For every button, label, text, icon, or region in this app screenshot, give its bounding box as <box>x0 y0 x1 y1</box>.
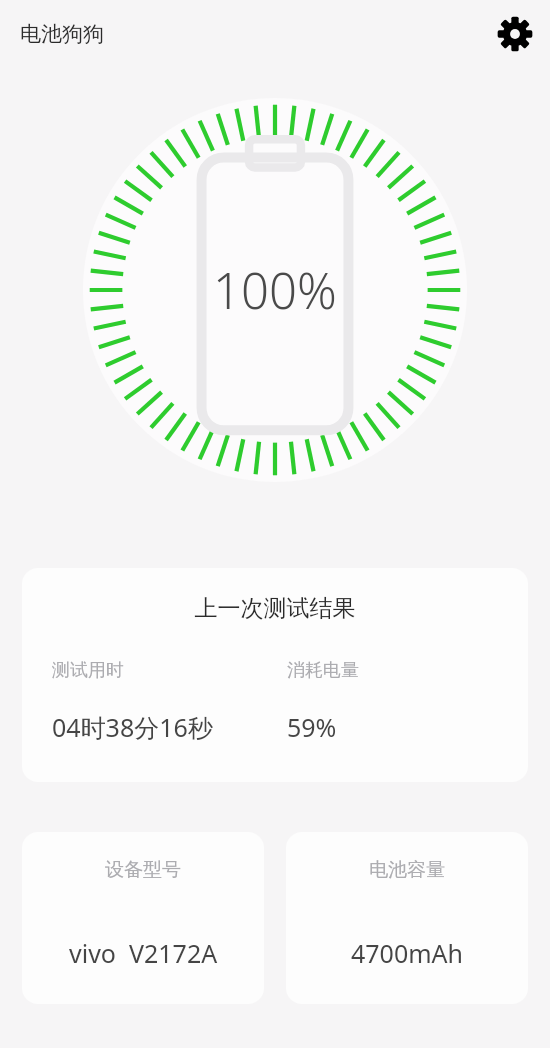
staticText: 59% <box>287 710 337 744</box>
staticText: 设备型号 <box>105 858 181 882</box>
staticText: 100% <box>213 257 337 324</box>
staticText: 测试用时 <box>52 659 124 682</box>
button[interactable]: 设备型号 <box>22 832 264 1004</box>
staticText: vivo V2172A <box>69 936 218 970</box>
staticText: 消耗电量 <box>287 659 359 682</box>
button[interactable]: 上一次测试结果 <box>22 568 528 782</box>
staticText: 电池容量 <box>369 858 445 882</box>
staticText: 4700mAh <box>351 936 464 970</box>
button[interactable]: Settings <box>492 11 538 57</box>
staticText: 上一次测试结果 <box>22 594 528 623</box>
staticText: 电池狗狗 <box>20 21 104 47</box>
staticText: 04时38分16秒 <box>52 710 213 744</box>
button[interactable]: 电池容量 <box>286 832 528 1004</box>
